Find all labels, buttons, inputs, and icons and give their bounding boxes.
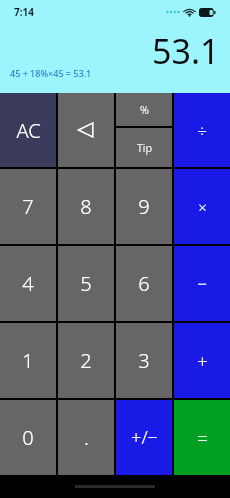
button[interactable]: + — [174, 323, 230, 398]
staticText: 9 — [138, 193, 150, 220]
staticText: 3 — [138, 347, 150, 374]
staticText: . — [84, 424, 89, 451]
button[interactable]: 0 — [0, 400, 56, 475]
staticText: + — [197, 348, 208, 374]
button[interactable]: 3 — [116, 323, 172, 398]
button[interactable]: . — [58, 400, 114, 475]
staticText: 7 — [22, 193, 34, 220]
staticText: 8 — [80, 193, 92, 220]
staticText: 6 — [138, 270, 150, 297]
button[interactable]: Tip — [116, 128, 172, 167]
button[interactable]: 6 — [116, 246, 172, 321]
staticText: 0 — [22, 424, 34, 451]
staticText: AC — [16, 117, 41, 144]
button[interactable]: 5 — [58, 246, 114, 321]
button[interactable]: AC — [0, 93, 56, 167]
staticText: 5 — [80, 270, 92, 297]
staticText: +/− — [131, 425, 158, 450]
button[interactable]: 4 — [0, 246, 56, 321]
staticText: ÷ — [197, 119, 207, 142]
staticText: 2 — [80, 347, 92, 374]
button[interactable]: +/− — [116, 400, 172, 475]
button[interactable]: = — [174, 400, 230, 475]
button[interactable]: ÷ — [174, 93, 230, 167]
button[interactable]: Backspace — [58, 93, 114, 167]
staticText: 7:14 — [14, 5, 34, 19]
button[interactable]: × — [174, 169, 230, 244]
button[interactable]: − — [174, 246, 230, 321]
staticText: 4 — [22, 270, 34, 297]
button[interactable]: 1 — [0, 323, 56, 398]
staticText: 45 + 18%×45 = 53.1 — [10, 67, 92, 79]
staticText: × — [198, 197, 207, 217]
button[interactable]: % — [116, 93, 172, 126]
button[interactable]: 7 — [0, 169, 56, 244]
staticText: − — [197, 272, 207, 295]
staticText: 1 — [22, 347, 34, 374]
staticText: = — [197, 425, 208, 451]
staticText: % — [140, 102, 149, 117]
staticText: 53.1 — [152, 28, 220, 74]
button[interactable]: 8 — [58, 169, 114, 244]
button[interactable]: 9 — [116, 169, 172, 244]
staticText: Tip — [137, 140, 152, 155]
button[interactable]: 2 — [58, 323, 114, 398]
